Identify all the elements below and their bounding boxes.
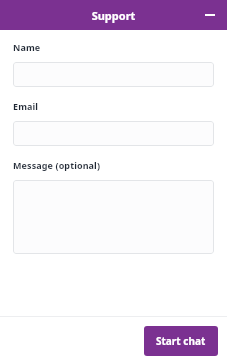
button[interactable]: Name input (13, 62, 214, 87)
button[interactable]: Message input (13, 180, 214, 254)
staticText: Start chat (156, 334, 206, 348)
staticText: Name (13, 41, 41, 53)
button[interactable]: Start chat (144, 326, 218, 356)
staticText: Support (0, 8, 227, 23)
staticText: Email (13, 100, 39, 112)
staticText: Message (optional) (13, 159, 101, 171)
button[interactable]: Email input (13, 121, 214, 146)
button[interactable]: Minimize (199, 4, 221, 26)
